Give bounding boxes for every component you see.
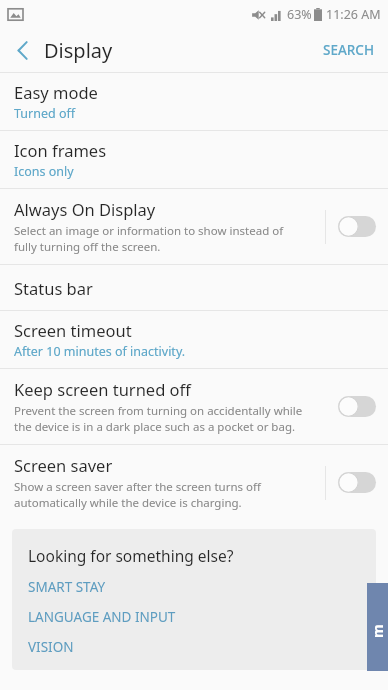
button[interactable]: Easy mode bbox=[0, 73, 388, 130]
staticText: SEARCH bbox=[323, 41, 374, 59]
staticText: Icon frames bbox=[14, 139, 107, 161]
staticText: Screen saver bbox=[14, 454, 113, 476]
staticText: 11:26 AM bbox=[326, 6, 381, 23]
staticText: After 10 minutes of inactivity. bbox=[14, 343, 186, 360]
button[interactable]: Screen timeout bbox=[0, 311, 388, 368]
button[interactable]: Always On Display switch bbox=[326, 189, 388, 264]
button[interactable]: LANGUAGE AND INPUT bbox=[28, 608, 176, 626]
staticText: Show a screen saver after the screen tur… bbox=[14, 479, 261, 495]
button[interactable]: Keep screen turned off bbox=[0, 369, 388, 444]
button[interactable]: Keep screen turned off switch bbox=[326, 369, 388, 444]
button[interactable]: SEARCH bbox=[309, 33, 388, 67]
button[interactable]: SMART STAY bbox=[28, 578, 106, 596]
button[interactable]: Icon frames bbox=[0, 131, 388, 188]
button[interactable]: Back bbox=[0, 28, 44, 72]
staticText: Always On Display bbox=[14, 198, 156, 220]
staticText: mobile.ir bbox=[368, 617, 387, 638]
staticText: automatically while the device is chargi… bbox=[14, 495, 242, 511]
staticText: 63% bbox=[287, 6, 312, 23]
staticText: Display bbox=[44, 37, 113, 64]
staticText: Looking for something else? bbox=[28, 545, 234, 566]
staticText: Select an image or information to show i… bbox=[14, 223, 284, 239]
button[interactable]: VISION bbox=[28, 638, 74, 656]
staticText: the device is in a dark place such as a … bbox=[14, 419, 296, 435]
staticText: Easy mode bbox=[14, 81, 98, 103]
staticText: Icons only bbox=[14, 163, 74, 180]
staticText: Turned off bbox=[14, 105, 76, 122]
button[interactable]: Screen saver bbox=[0, 445, 388, 520]
button[interactable]: Status bar bbox=[0, 265, 388, 310]
staticText: SMART STAY bbox=[28, 578, 106, 596]
staticText: Keep screen turned off bbox=[14, 378, 191, 400]
button[interactable]: Always On Display bbox=[0, 189, 388, 264]
button[interactable]: Screen saver switch bbox=[326, 445, 388, 520]
staticText: Prevent the screen from turning on accid… bbox=[14, 403, 303, 419]
staticText: LANGUAGE AND INPUT bbox=[28, 608, 176, 626]
staticText: VISION bbox=[28, 638, 74, 656]
staticText: Screen timeout bbox=[14, 319, 132, 341]
staticText: fully turning off the screen. bbox=[14, 239, 161, 255]
staticText: Status bar bbox=[14, 277, 93, 299]
